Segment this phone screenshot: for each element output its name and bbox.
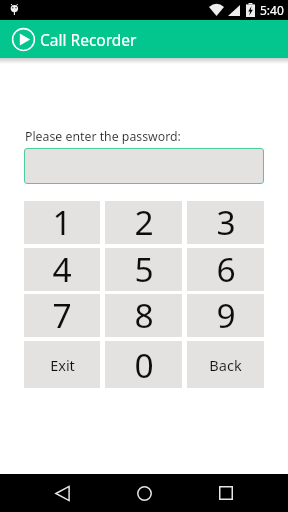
button[interactable]: 4 [24, 248, 100, 291]
staticText: 4 [52, 246, 72, 289]
staticText: 1 [52, 199, 72, 242]
staticText: 7 [52, 292, 72, 335]
staticText: 6 [216, 246, 236, 289]
staticText: Call Recorder [40, 29, 137, 50]
button[interactable]: 6 [187, 248, 264, 291]
staticText: 5 [134, 246, 154, 289]
button[interactable]: Back [42, 474, 82, 512]
staticText: 3 [216, 199, 236, 242]
staticText: 8 [134, 292, 154, 335]
button[interactable]: 9 [187, 294, 264, 337]
button[interactable]: 3 [187, 201, 264, 244]
button[interactable]: 5 [105, 248, 182, 291]
staticText: 9 [216, 292, 236, 335]
button[interactable]: Play [11, 27, 36, 52]
button[interactable]: 2 [105, 201, 182, 244]
staticText: 0 [134, 342, 154, 388]
button[interactable]: Exit [24, 341, 100, 388]
staticText: Exit [50, 355, 75, 375]
button[interactable]: 8 [105, 294, 182, 337]
button[interactable]: Home [124, 474, 164, 512]
button[interactable]: Recents [206, 474, 246, 512]
button[interactable]: Back [187, 341, 264, 388]
staticText: Back [209, 355, 242, 375]
button[interactable]: 0 [105, 341, 182, 388]
staticText: 2 [134, 199, 154, 242]
button[interactable]: 1 [24, 201, 100, 244]
button[interactable]: 7 [24, 294, 100, 337]
staticText: Please enter the password: [25, 128, 181, 145]
button[interactable] [24, 148, 264, 184]
staticText: 5:40 [260, 2, 284, 18]
